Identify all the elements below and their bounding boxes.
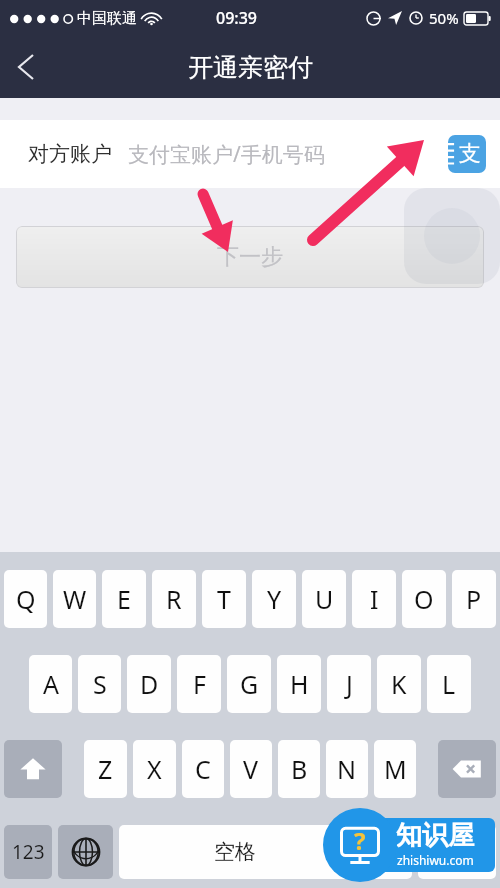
staticText: 09:39 <box>216 7 257 29</box>
button[interactable]: F <box>177 655 221 713</box>
button[interactable]: U <box>302 570 346 628</box>
button[interactable]: E <box>102 570 146 628</box>
staticText: F <box>193 667 206 701</box>
button[interactable]: S <box>78 655 121 713</box>
staticText: 知识屋 <box>396 819 474 852</box>
staticText: Z <box>98 752 113 786</box>
button[interactable]: I <box>352 570 396 628</box>
staticText: 中国联通 <box>77 9 137 28</box>
staticText: H <box>290 667 309 701</box>
staticText: X <box>147 752 162 786</box>
staticText: 下一步 <box>217 243 283 271</box>
staticText: O <box>414 582 434 616</box>
button[interactable]: Z <box>84 740 127 798</box>
button[interactable]: 下一步 <box>16 226 484 288</box>
button[interactable]: R <box>152 570 196 628</box>
button[interactable]: G <box>227 655 271 713</box>
button[interactable]: K <box>377 655 421 713</box>
staticText: 换行 <box>438 840 476 864</box>
staticText: 支 <box>459 140 481 168</box>
staticText: 50% <box>429 8 459 28</box>
button[interactable]: 对方账户 <box>0 120 500 188</box>
staticText: J <box>346 667 353 701</box>
button[interactable]: Back <box>0 41 52 93</box>
staticText: M <box>384 752 407 786</box>
button[interactable]: Q <box>4 570 47 628</box>
button[interactable]: Change language <box>58 825 113 879</box>
staticText: E <box>117 582 131 616</box>
staticText: 支付宝账户/手机号码 <box>128 140 325 169</box>
button[interactable]: X <box>133 740 176 798</box>
staticText: W <box>63 582 87 616</box>
staticText: A <box>43 667 59 701</box>
button[interactable]: 换行 <box>418 825 496 879</box>
staticText: @ <box>375 837 395 867</box>
button[interactable]: 123 <box>4 825 52 879</box>
staticText: N <box>337 752 357 786</box>
staticText: D <box>140 667 159 701</box>
staticText: K <box>391 667 407 701</box>
staticText: 123 <box>12 839 45 865</box>
staticText: 对方账户 <box>28 141 112 167</box>
staticText: Y <box>267 582 282 616</box>
button[interactable]: P <box>452 570 496 628</box>
staticText: T <box>217 582 231 616</box>
button[interactable]: L <box>427 655 471 713</box>
button[interactable]: J <box>327 655 371 713</box>
button[interactable]: N <box>326 740 368 798</box>
button[interactable]: O <box>402 570 446 628</box>
button[interactable]: C <box>182 740 224 798</box>
staticText: C <box>195 752 211 786</box>
button[interactable]: B <box>278 740 320 798</box>
button[interactable]: Delete <box>438 740 496 798</box>
button[interactable]: Choose contact <box>448 135 486 173</box>
staticText: I <box>370 582 379 616</box>
staticText: L <box>442 667 456 701</box>
staticText: B <box>291 752 308 786</box>
button[interactable]: @ <box>357 825 412 879</box>
staticText: G <box>240 667 259 701</box>
button[interactable]: V <box>230 740 272 798</box>
staticText: Q <box>16 582 36 616</box>
staticText: S <box>93 667 107 701</box>
button[interactable]: 空格 <box>119 825 351 879</box>
button[interactable]: A <box>29 655 72 713</box>
button[interactable]: D <box>127 655 171 713</box>
staticText: R <box>166 582 182 616</box>
staticText: 开通亲密付 <box>188 52 313 83</box>
button[interactable]: Shift <box>4 740 62 798</box>
button[interactable]: M <box>374 740 416 798</box>
staticText: 空格 <box>214 839 256 865</box>
staticText: P <box>466 582 482 616</box>
button[interactable]: Y <box>252 570 296 628</box>
staticText: zhishiwu.com <box>397 852 474 868</box>
staticText: V <box>243 752 259 786</box>
staticText: ? <box>354 824 366 857</box>
button[interactable]: H <box>277 655 321 713</box>
button[interactable]: W <box>53 570 96 628</box>
staticText: U <box>315 582 334 616</box>
button[interactable]: T <box>202 570 246 628</box>
